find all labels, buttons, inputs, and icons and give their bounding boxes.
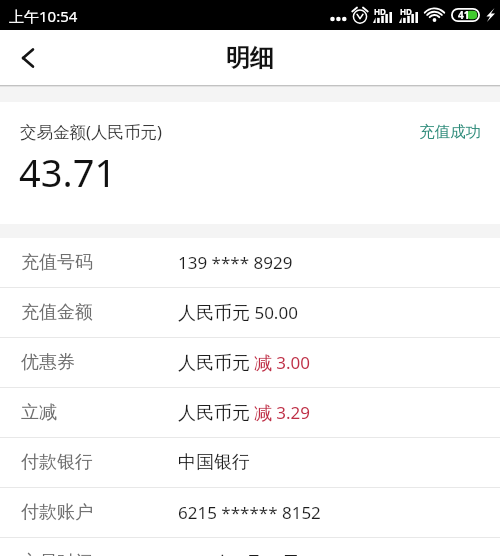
button[interactable]: 优惠券 xyxy=(0,338,500,387)
staticText: 优惠券 xyxy=(21,351,75,374)
staticText: HD xyxy=(374,6,386,17)
button[interactable]: 付款账户 xyxy=(0,488,500,537)
staticText: 6215 ****** 8152 xyxy=(178,501,321,524)
button[interactable]: 立减 xyxy=(0,388,500,437)
button[interactable]: 充值金额 xyxy=(0,288,500,337)
button[interactable]: Back xyxy=(0,30,55,85)
staticText: 充值成功 xyxy=(419,122,481,142)
staticText: 立减 xyxy=(21,401,57,424)
button[interactable]: 付款银行 xyxy=(0,438,500,487)
staticText: 2024年7月18日 10:41:45 xyxy=(178,551,372,556)
staticText: 充值号码 xyxy=(21,251,93,274)
staticText: 人民币元 减 3.29 xyxy=(178,401,311,425)
staticText: 139 **** 8929 xyxy=(178,251,293,274)
staticText: 41 xyxy=(458,8,470,22)
staticText: 付款银行 xyxy=(21,451,93,474)
staticText: 人民币元 减 3.00 xyxy=(178,351,311,375)
staticText: 充值金额 xyxy=(21,301,93,324)
staticText: 中国银行 xyxy=(178,451,250,474)
staticText: 明细 xyxy=(226,43,274,73)
staticText: 付款账户 xyxy=(21,501,93,524)
staticText: 交易时间 xyxy=(21,551,93,556)
button[interactable]: 充值号码 xyxy=(0,238,500,287)
staticText: 人民币元 50.00 xyxy=(178,301,298,325)
button[interactable]: 交易时间 xyxy=(0,538,500,556)
staticText: 交易金额(人民币元) xyxy=(20,120,162,143)
staticText: HD xyxy=(400,6,412,17)
staticText: 43.71 xyxy=(19,146,117,198)
staticText: 上午10:54 xyxy=(9,6,78,26)
